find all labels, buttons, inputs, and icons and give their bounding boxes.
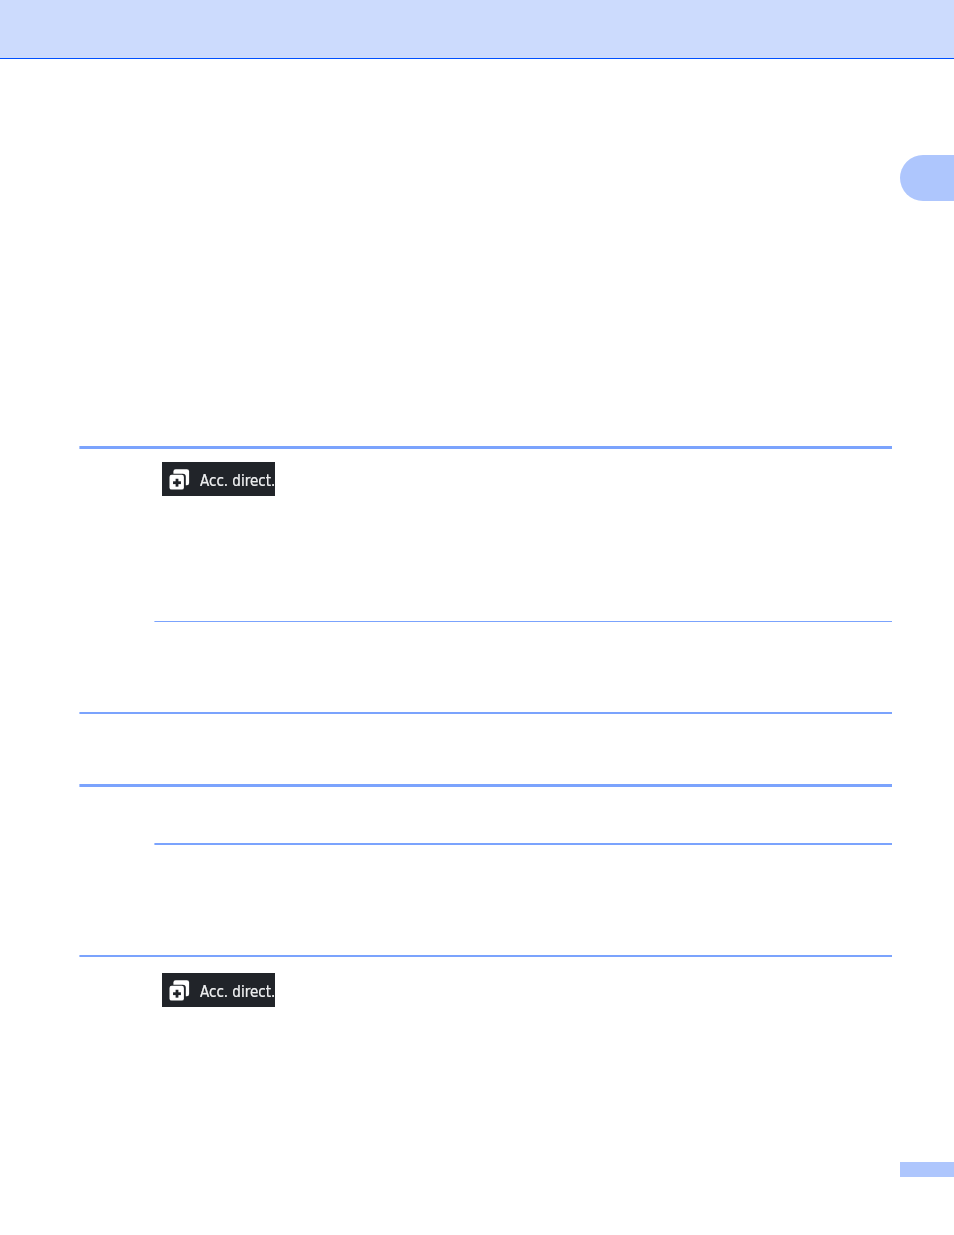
staticText: Acc. direct.: [200, 472, 275, 489]
button[interactable]: Chapter tab: [900, 155, 954, 201]
button[interactable]: Acc. direct.: [162, 462, 275, 496]
button[interactable]: Acc. direct.: [162, 973, 275, 1007]
staticText: Acc. direct.: [200, 983, 275, 1000]
